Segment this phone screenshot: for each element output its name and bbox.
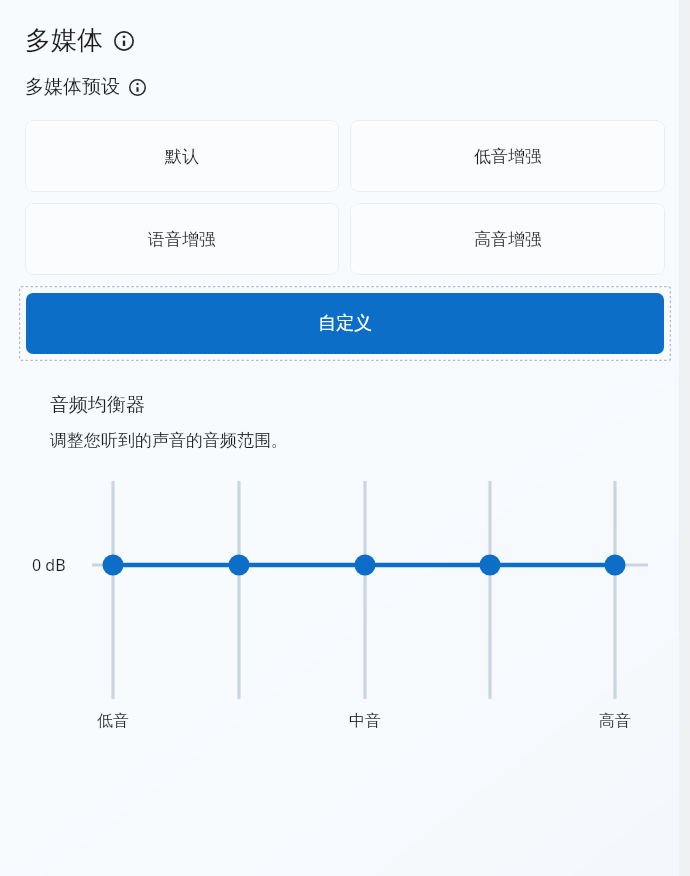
button[interactable]: 多媒体预设信息 <box>129 79 146 96</box>
staticText: 音频均衡器 <box>50 393 145 417</box>
staticText: 高音 <box>590 711 640 731</box>
button[interactable]: 低音增强 <box>350 120 665 192</box>
staticText: 中音 <box>340 711 390 731</box>
staticText: 高音增强 <box>474 229 542 250</box>
staticText: 多媒体 <box>25 24 103 57</box>
staticText: 0 dB <box>32 554 66 576</box>
staticText: 低音增强 <box>474 146 542 167</box>
staticText: 默认 <box>165 146 199 167</box>
button[interactable]: 高音增强 <box>350 203 665 275</box>
staticText: 语音增强 <box>148 229 216 250</box>
staticText: 调整您听到的声音的音频范围。 <box>50 430 288 451</box>
button[interactable]: 自定义 <box>26 293 664 354</box>
staticText: 低音 <box>88 711 138 731</box>
button[interactable]: 语音增强 <box>25 203 339 275</box>
staticText: 多媒体预设 <box>25 75 120 99</box>
button[interactable]: 默认 <box>25 120 339 192</box>
button[interactable]: 多媒体信息 <box>114 31 134 51</box>
staticText: 自定义 <box>318 312 372 335</box>
